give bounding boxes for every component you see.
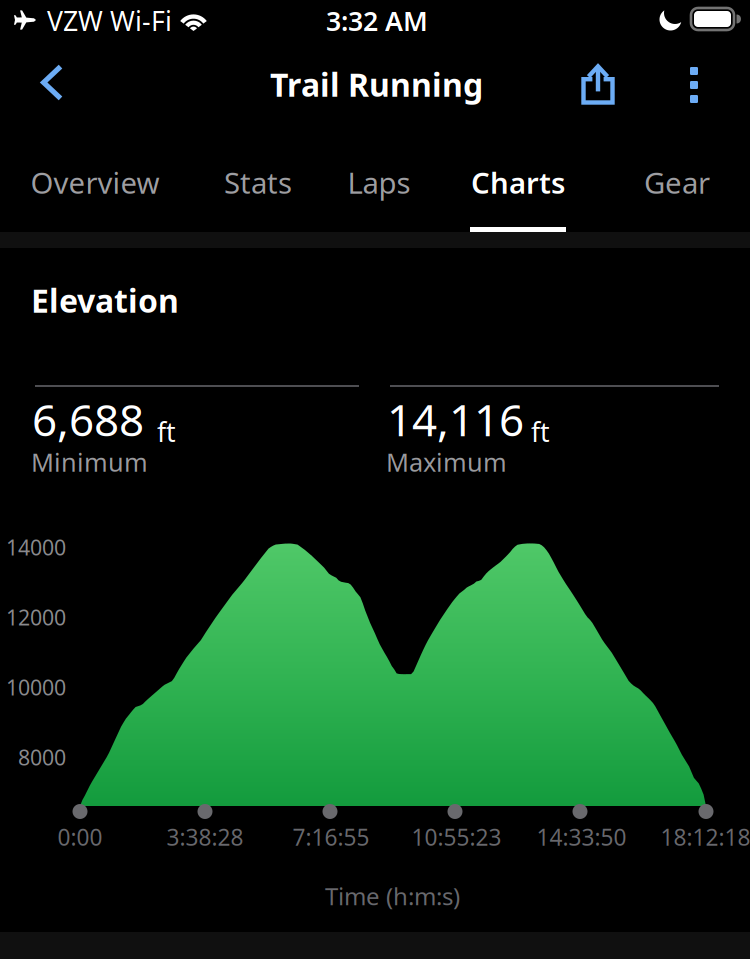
staticText: ft: [531, 414, 550, 449]
staticText: 10:55:23: [411, 822, 501, 852]
staticText: Maximum: [386, 445, 507, 479]
staticText: 6,688: [32, 390, 144, 448]
staticText: Overview: [30, 163, 159, 202]
staticText: 12000: [6, 603, 66, 631]
staticText: Trail Running: [270, 63, 483, 105]
button[interactable]: Laps: [324, 136, 434, 232]
staticText: Time (h:m:s): [325, 880, 460, 912]
staticText: Laps: [347, 163, 410, 202]
staticText: 3:32 AM: [326, 3, 428, 38]
staticText: 10000: [6, 673, 66, 701]
staticText: Gear: [644, 163, 710, 202]
staticText: Elevation: [31, 279, 179, 321]
staticText: 14:33:50: [536, 822, 626, 852]
staticText: 14,116: [387, 390, 524, 448]
staticText: 14000: [6, 533, 66, 561]
staticText: 8000: [18, 743, 66, 771]
button[interactable]: Share: [561, 48, 635, 122]
staticText: Charts: [471, 163, 565, 202]
button[interactable]: Overview: [15, 136, 175, 232]
staticText: Stats: [224, 163, 292, 202]
staticText: 3:38:28: [166, 822, 243, 852]
button[interactable]: More options: [661, 48, 727, 122]
staticText: 7:16:55: [292, 822, 369, 852]
staticText: VZW Wi-Fi: [47, 3, 172, 38]
staticText: 0:00: [57, 822, 102, 852]
staticText: ft: [157, 414, 176, 449]
button[interactable]: Stats: [203, 136, 313, 232]
button[interactable]: Charts: [452, 136, 584, 232]
button[interactable]: Gear: [615, 136, 739, 232]
button[interactable]: Trail Running: [262, 49, 491, 119]
staticText: 18:12:18: [660, 822, 750, 852]
staticText: Minimum: [31, 445, 148, 479]
button[interactable]: Back: [8, 48, 96, 122]
